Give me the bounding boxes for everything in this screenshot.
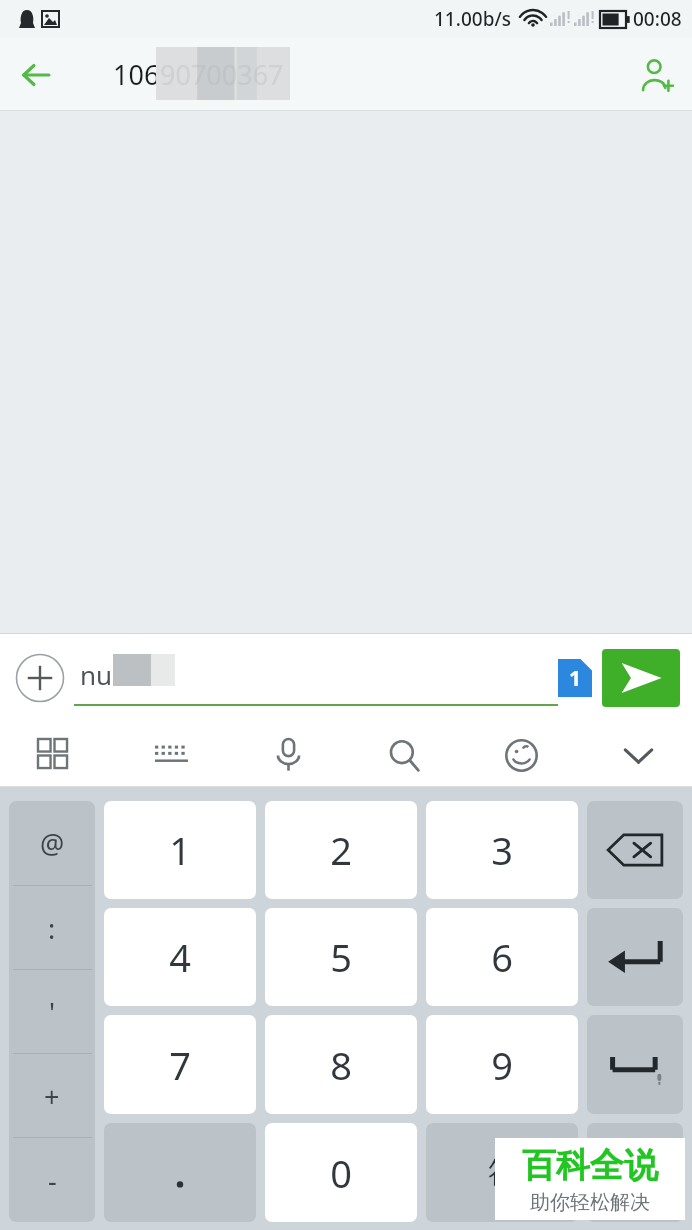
button[interactable]: 7 bbox=[104, 1015, 256, 1114]
button[interactable]: Space bbox=[587, 1015, 683, 1114]
staticText: 11.00b/s bbox=[434, 6, 511, 32]
button[interactable]: Add contact bbox=[620, 39, 692, 111]
button[interactable]: Emoji bbox=[489, 725, 553, 785]
button[interactable]: 0 bbox=[265, 1123, 417, 1222]
button[interactable]: Enter bbox=[587, 908, 683, 1006]
staticText: nu bbox=[80, 657, 113, 692]
staticText: 00:08 bbox=[633, 6, 682, 32]
button[interactable]: 符 bbox=[426, 1123, 578, 1222]
staticText: 3 bbox=[491, 824, 513, 876]
staticText: 1 bbox=[569, 664, 582, 693]
button[interactable]: Search bbox=[372, 725, 436, 785]
button[interactable]: Voice input bbox=[256, 725, 320, 785]
staticText: 6 bbox=[491, 931, 513, 983]
staticText: 90700367 bbox=[160, 56, 284, 93]
button[interactable]: 1 bbox=[104, 801, 256, 899]
staticText: 90700367 bbox=[160, 56, 284, 93]
staticText: 5 bbox=[330, 931, 352, 983]
button[interactable]: Backspace bbox=[587, 801, 683, 899]
button[interactable]: Keyboard bbox=[139, 725, 203, 785]
staticText: 106 bbox=[113, 56, 160, 93]
staticText: + bbox=[44, 1078, 60, 1115]
button[interactable]: Symbols bbox=[587, 1123, 683, 1222]
staticText: 9 bbox=[491, 1039, 513, 1091]
button[interactable]: nu bbox=[74, 633, 558, 722]
button[interactable]: 2 bbox=[265, 801, 417, 899]
button[interactable]: Hide keyboard bbox=[606, 725, 670, 785]
staticText: ' bbox=[49, 994, 56, 1031]
staticText: 8 bbox=[330, 1039, 352, 1091]
button[interactable]: Send bbox=[602, 649, 680, 707]
button[interactable]: 4 bbox=[104, 908, 256, 1006]
button[interactable]: 8 bbox=[265, 1015, 417, 1114]
staticText: @ bbox=[40, 825, 65, 862]
staticText: - bbox=[48, 1162, 57, 1199]
button[interactable]: 5 bbox=[265, 908, 417, 1006]
button[interactable]: + bbox=[9, 1054, 95, 1138]
staticText: : bbox=[48, 910, 56, 947]
staticText: 0 bbox=[330, 1147, 352, 1199]
button[interactable]: Period bbox=[104, 1123, 256, 1222]
button[interactable]: ' bbox=[9, 970, 95, 1054]
button[interactable]: Attach bbox=[14, 652, 66, 704]
staticText: 2 bbox=[330, 824, 352, 876]
staticText: 4 bbox=[169, 931, 191, 983]
staticText: 助你轻松解决 bbox=[530, 1190, 650, 1215]
staticText: 符 bbox=[488, 1154, 517, 1191]
button[interactable]: 3 bbox=[426, 801, 578, 899]
button[interactable]: @ bbox=[9, 801, 95, 886]
button[interactable]: - bbox=[9, 1138, 95, 1222]
button[interactable]: : bbox=[9, 886, 95, 970]
staticText: 百科全说 bbox=[522, 1144, 658, 1187]
staticText: 1 bbox=[169, 824, 191, 876]
button[interactable]: 6 bbox=[426, 908, 578, 1006]
button[interactable]: Apps bbox=[22, 725, 86, 785]
button[interactable]: 9 bbox=[426, 1015, 578, 1114]
button[interactable]: Back bbox=[0, 39, 72, 111]
button[interactable]: SIM 1 bbox=[558, 659, 592, 697]
staticText: 7 bbox=[169, 1039, 191, 1091]
